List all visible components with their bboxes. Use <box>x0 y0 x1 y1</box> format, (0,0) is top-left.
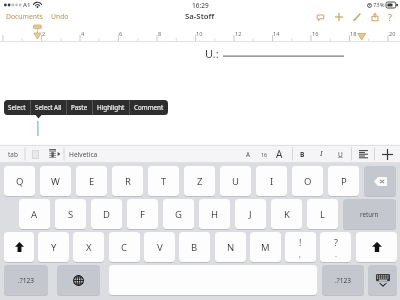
button[interactable]: ? <box>320 232 351 262</box>
button[interactable]: Paste <box>67 100 92 115</box>
button[interactable]: Helvetica <box>69 145 98 163</box>
staticText: ? <box>388 11 392 23</box>
staticText: S <box>68 208 74 221</box>
button[interactable]: L <box>307 199 338 229</box>
button[interactable]: U <box>330 145 350 163</box>
staticText: Y <box>51 241 57 254</box>
staticText: L <box>320 208 325 221</box>
staticText: D <box>103 208 110 221</box>
button[interactable]: C <box>109 232 140 262</box>
staticText: return <box>360 210 379 218</box>
staticText: Sa-Stoff <box>185 11 215 22</box>
staticText: Documents <box>6 12 43 21</box>
button[interactable]: Share <box>370 12 380 22</box>
button[interactable]: 16 <box>256 145 272 163</box>
staticText: A <box>31 208 38 221</box>
staticText: Select <box>8 103 26 112</box>
staticText: 73% <box>373 1 385 9</box>
button[interactable]: Insert <box>375 145 400 163</box>
button[interactable]: X <box>73 232 104 262</box>
button[interactable]: Paragraph <box>45 145 64 163</box>
button[interactable]: A <box>271 145 288 163</box>
button[interactable]: Backspace <box>364 166 396 196</box>
staticText: A1 <box>23 1 31 9</box>
staticText: T <box>161 175 167 188</box>
button[interactable]: H <box>199 199 230 229</box>
button[interactable]: Shift <box>4 232 34 262</box>
staticText: 8 <box>158 30 162 38</box>
button[interactable]: Comment <box>130 100 168 115</box>
staticText: 2 <box>42 30 46 38</box>
staticText: Paste <box>71 103 88 112</box>
button[interactable]: Select <box>4 100 30 115</box>
button[interactable]: .?123 <box>4 265 48 295</box>
button[interactable]: Documents <box>4 10 45 23</box>
button[interactable]: P <box>328 166 359 196</box>
staticText: 20 <box>389 30 396 38</box>
staticText: 16:29 <box>192 1 209 10</box>
staticText: R <box>125 175 131 188</box>
button[interactable]: I <box>256 166 287 196</box>
button[interactable]: Y <box>38 232 69 262</box>
staticText: W <box>51 175 60 188</box>
button[interactable]: B <box>293 145 312 163</box>
button[interactable]: M <box>250 232 281 262</box>
button[interactable]: Comment <box>316 12 326 22</box>
button[interactable]: Insert <box>334 12 344 22</box>
button[interactable]: R <box>112 166 143 196</box>
staticText: Helvetica <box>69 150 98 159</box>
button[interactable]: .?123 <box>322 265 364 295</box>
staticText: 16 <box>312 30 319 38</box>
staticText: U <box>232 175 239 188</box>
staticText: Select All <box>35 103 62 112</box>
button[interactable]: K <box>271 199 302 229</box>
staticText: C <box>121 241 128 254</box>
button[interactable]: A <box>19 199 50 229</box>
staticText: A <box>276 147 283 161</box>
button[interactable]: S <box>55 199 86 229</box>
staticText: K <box>284 208 290 221</box>
button[interactable]: J <box>235 199 266 229</box>
staticText: M <box>261 241 270 254</box>
button[interactable]: B <box>179 232 210 262</box>
button[interactable]: tab <box>0 145 25 163</box>
button[interactable]: Highlight <box>93 100 129 115</box>
staticText: U.: <box>205 46 219 61</box>
button[interactable]: F <box>127 199 158 229</box>
button[interactable]: O <box>292 166 323 196</box>
button[interactable]: Page layout <box>25 145 45 163</box>
staticText: ? <box>334 236 338 248</box>
button[interactable]: Undo <box>49 10 71 23</box>
staticText: J <box>249 208 252 221</box>
button[interactable]: Select All <box>31 100 66 115</box>
staticText: G <box>175 208 182 221</box>
button[interactable]: Align <box>352 145 374 163</box>
button[interactable]: D <box>91 199 122 229</box>
button[interactable]: Z <box>184 166 215 196</box>
button[interactable]: W <box>40 166 71 196</box>
button[interactable]: V <box>144 232 175 262</box>
staticText: X <box>86 241 92 254</box>
button[interactable]: return <box>343 199 396 229</box>
staticText: A <box>246 150 250 158</box>
staticText: ! <box>299 236 302 248</box>
button[interactable]: Shift <box>356 232 397 262</box>
button[interactable]: Hide keyboard <box>368 265 397 295</box>
button[interactable]: ? <box>387 11 393 23</box>
button[interactable]: E <box>76 166 107 196</box>
button[interactable]: I <box>312 145 330 163</box>
button[interactable]: T <box>148 166 179 196</box>
staticText: tab <box>8 150 18 159</box>
button[interactable]: G <box>163 199 194 229</box>
button[interactable]: Language <box>57 265 100 295</box>
button[interactable]: ! <box>285 232 316 262</box>
staticText: I <box>320 149 323 159</box>
button[interactable]: Q <box>4 166 35 196</box>
button[interactable]: Brush <box>352 12 362 22</box>
staticText: I <box>270 175 274 188</box>
button[interactable]: U <box>220 166 251 196</box>
staticText: Undo <box>51 12 69 21</box>
button[interactable]: A <box>240 145 256 163</box>
button[interactable]: N <box>215 232 246 262</box>
